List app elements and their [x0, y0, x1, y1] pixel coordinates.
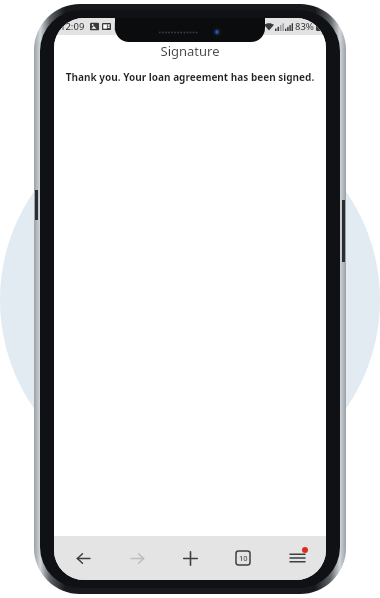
button[interactable]: Menu: [273, 536, 321, 580]
staticText: 83%: [295, 20, 314, 33]
staticText: Signature: [54, 42, 326, 60]
button[interactable]: New tab: [166, 536, 214, 580]
staticText: Thank you. Your loan agreement has been …: [58, 70, 322, 84]
button[interactable]: Tabs, 10 open: [219, 536, 267, 580]
button[interactable]: Back: [59, 536, 107, 580]
button[interactable]: Forward: [113, 536, 161, 580]
staticText: 10: [239, 553, 248, 563]
staticText: 12:09: [60, 20, 85, 33]
